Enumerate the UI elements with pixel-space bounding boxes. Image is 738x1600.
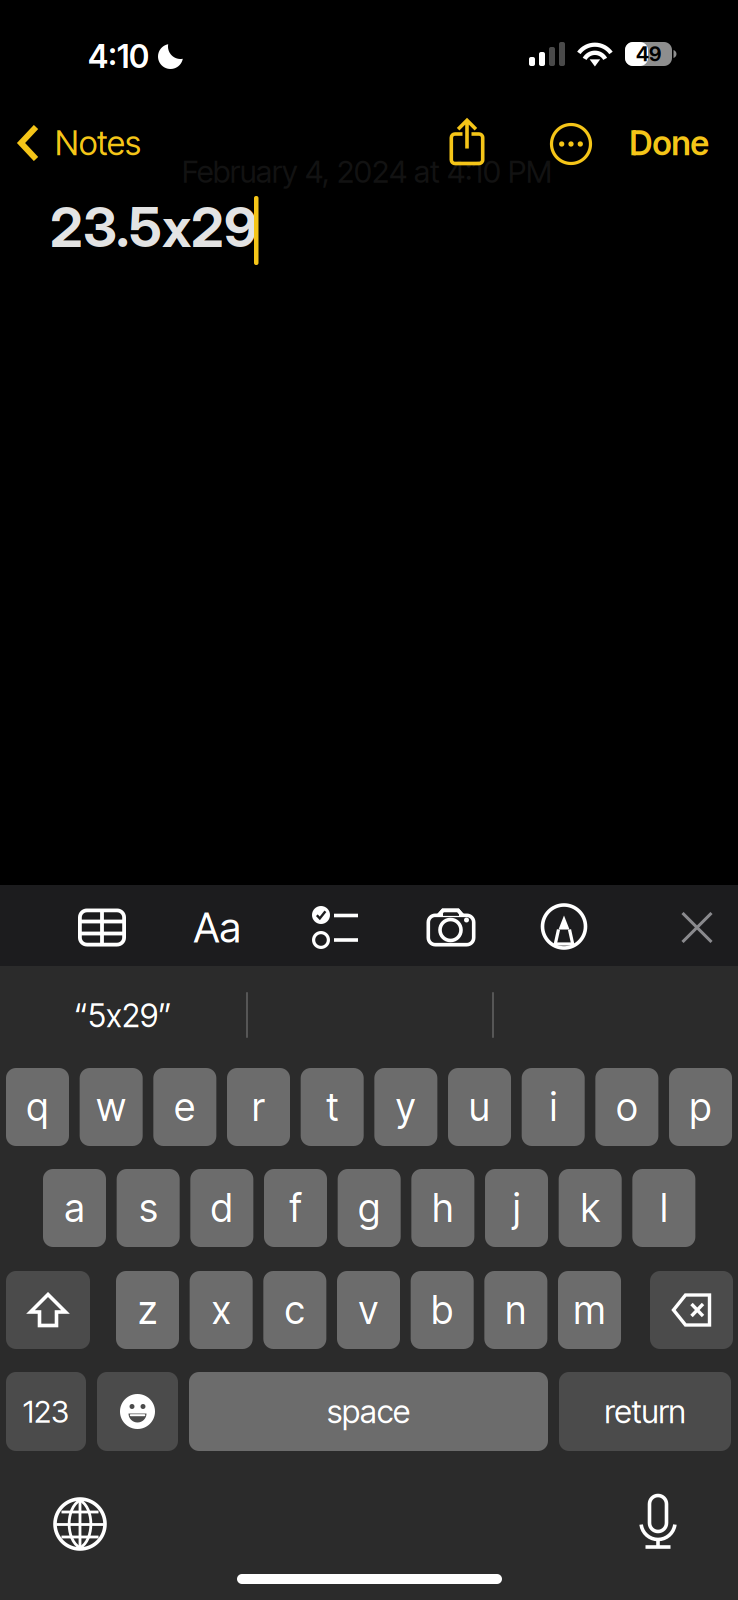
staticText: j — [513, 1185, 520, 1231]
button[interactable]: return — [559, 1372, 731, 1451]
button[interactable]: v — [337, 1271, 400, 1349]
staticText: 123 — [23, 1393, 69, 1430]
button[interactable]: u — [448, 1068, 511, 1146]
button[interactable]: Checklist — [293, 887, 377, 968]
button[interactable]: j — [485, 1169, 548, 1247]
staticText: f — [289, 1185, 301, 1231]
button[interactable]: Done — [614, 106, 724, 180]
button[interactable]: w — [80, 1068, 143, 1146]
button[interactable]: h — [411, 1169, 474, 1247]
staticText: “5 — [74, 996, 106, 1035]
staticText: r — [252, 1084, 265, 1130]
button[interactable]: n — [484, 1271, 547, 1349]
button[interactable]: “5 — [0, 966, 246, 1065]
staticText: Notes — [55, 123, 141, 163]
button[interactable]: c — [263, 1271, 326, 1349]
button[interactable]: Notes — [0, 106, 163, 180]
button[interactable]: Shift — [6, 1271, 90, 1349]
button[interactable]: g — [338, 1169, 401, 1247]
button[interactable]: d — [190, 1169, 253, 1247]
button[interactable]: a — [43, 1169, 106, 1247]
button[interactable]: l — [632, 1169, 695, 1247]
staticText: n — [505, 1287, 526, 1333]
button[interactable]: q — [6, 1068, 69, 1146]
button[interactable]: z — [116, 1271, 179, 1349]
staticText: m — [573, 1287, 605, 1333]
staticText: y — [396, 1084, 416, 1130]
staticText: d — [211, 1185, 233, 1231]
button[interactable]: i — [522, 1068, 585, 1146]
staticText: 4:10 — [88, 37, 149, 76]
button[interactable]: m — [558, 1271, 621, 1349]
button[interactable]: b — [411, 1271, 474, 1349]
staticText: 29 — [191, 194, 258, 260]
staticText: g — [358, 1185, 380, 1231]
staticText: i — [550, 1084, 557, 1130]
button[interactable]: Table — [60, 887, 144, 968]
staticText: w — [96, 1084, 126, 1130]
staticText: p — [689, 1084, 711, 1130]
staticText: x — [162, 194, 191, 260]
button[interactable]: o — [595, 1068, 658, 1146]
button[interactable]: Next keyboard — [38, 1485, 122, 1563]
button[interactable]: Camera — [409, 887, 493, 968]
button[interactable]: Share — [424, 104, 510, 178]
staticText: e — [174, 1084, 195, 1130]
staticText: q — [26, 1084, 48, 1130]
button[interactable]: y — [374, 1068, 437, 1146]
staticText: z — [138, 1287, 157, 1333]
staticText: February 4, 2024 at 4:10 PM — [182, 153, 552, 190]
staticText: space — [327, 1392, 410, 1431]
button[interactable]: Dictate — [616, 1483, 700, 1561]
staticText: h — [432, 1185, 453, 1231]
staticText: Aa — [193, 902, 240, 952]
staticText: l — [660, 1185, 667, 1231]
button[interactable]: t — [301, 1068, 364, 1146]
button[interactable]: Hide keyboard — [655, 887, 738, 968]
button[interactable]: Delete — [650, 1271, 733, 1349]
staticText: Done — [629, 123, 708, 163]
button[interactable]: e — [153, 1068, 216, 1146]
button[interactable]: 123 — [6, 1372, 86, 1451]
button[interactable]: Markup — [522, 886, 606, 967]
button[interactable]: s — [117, 1169, 180, 1247]
staticText: 49 — [636, 42, 661, 66]
staticText: u — [469, 1084, 490, 1130]
staticText: x — [212, 1287, 231, 1333]
button[interactable]: f — [264, 1169, 327, 1247]
staticText: k — [581, 1185, 600, 1231]
staticText: s — [139, 1185, 157, 1231]
staticText: o — [616, 1084, 637, 1130]
staticText: t — [326, 1084, 338, 1130]
button[interactable]: r — [227, 1068, 290, 1146]
staticText: a — [64, 1185, 84, 1231]
staticText: 29” — [122, 996, 172, 1035]
button[interactable]: space — [189, 1372, 548, 1451]
staticText: c — [285, 1287, 305, 1333]
button[interactable]: More options — [528, 107, 614, 181]
button[interactable]: x — [190, 1271, 253, 1349]
button[interactable]: Emoji — [97, 1372, 178, 1451]
button[interactable]: k — [559, 1169, 622, 1247]
staticText: 23.5 — [50, 194, 162, 260]
button[interactable]: p — [669, 1068, 732, 1146]
button[interactable]: Format — [175, 887, 259, 968]
staticText: return — [604, 1392, 685, 1431]
staticText: x — [106, 996, 122, 1035]
staticText: v — [358, 1287, 378, 1333]
staticText: b — [431, 1287, 453, 1333]
